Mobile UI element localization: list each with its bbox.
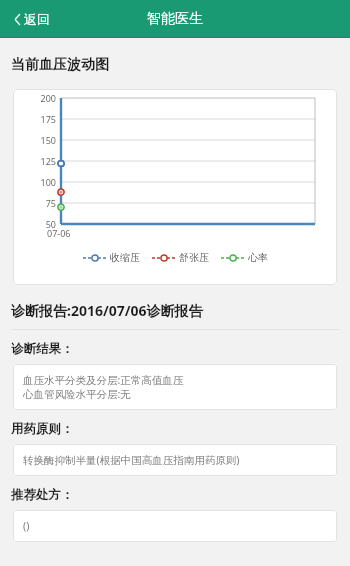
staticText: 用药原则： (11, 421, 74, 437)
staticText: 75 (26, 197, 56, 209)
staticText: 诊断结果： (11, 341, 74, 357)
staticText: 血压水平分类及分层:正常高值血压 (23, 373, 184, 387)
staticText: 50 (26, 218, 56, 230)
staticText: 125 (26, 155, 56, 167)
staticText: 200 (26, 92, 56, 104)
button[interactable]: 返回 (10, 7, 54, 31)
staticText: 收缩压 (110, 251, 140, 264)
staticText: 07-06 (47, 227, 71, 239)
staticText: () (23, 519, 30, 533)
staticText: 心率 (248, 251, 268, 264)
staticText: 舒张压 (179, 251, 209, 264)
staticText: 返回 (24, 11, 50, 27)
staticText: 150 (26, 134, 56, 146)
staticText: 推荐处方： (11, 487, 74, 503)
button[interactable]: 转换酶抑制半量(根据中国高血压指南用药原则) (13, 444, 337, 476)
staticText: 175 (26, 113, 56, 125)
staticText: 转换酶抑制半量(根据中国高血压指南用药原则) (23, 453, 240, 467)
button[interactable]: 血压水平分类及分层:正常高值血压 (13, 364, 337, 410)
staticText: 当前血压波动图 (11, 56, 109, 74)
button[interactable]: () (13, 510, 337, 542)
staticText: 诊断报告:2016/07/06诊断报告 (11, 301, 203, 320)
staticText: 智能医生 (147, 10, 203, 28)
staticText: 心血管风险水平分层:无 (23, 387, 131, 401)
staticText: 100 (26, 176, 56, 188)
